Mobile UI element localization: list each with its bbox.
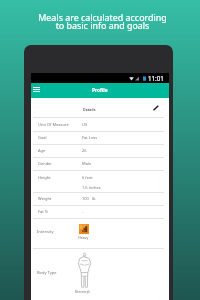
button[interactable]: Edit profile	[152, 104, 160, 112]
staticText: US	[82, 122, 88, 127]
staticText: Height	[38, 175, 82, 180]
staticText: Profile	[92, 87, 108, 94]
button[interactable]: Unit Of Measure	[31, 118, 169, 132]
staticText: Fat %	[38, 209, 82, 214]
staticText: Mesomorph	[75, 290, 90, 294]
staticText: 1.6 inches	[82, 185, 101, 190]
staticText: 6 feet	[82, 175, 93, 180]
staticText: Gender	[38, 161, 82, 166]
button[interactable]: Body Type	[31, 249, 169, 300]
button[interactable]: Open navigation menu	[31, 85, 42, 94]
staticText: Heavy	[78, 235, 89, 240]
staticText: Intensity	[37, 229, 54, 234]
staticText: Unit Of Measure	[38, 122, 82, 127]
staticText: 11:01	[148, 74, 164, 82]
staticText: Details	[83, 107, 96, 112]
button[interactable]: Weight	[31, 193, 169, 206]
button[interactable]: Height	[31, 171, 169, 193]
staticText: Body Type	[37, 270, 57, 275]
button[interactable]: Details	[31, 98, 169, 118]
button[interactable]: Gender	[31, 158, 169, 171]
staticText: Age	[38, 148, 82, 153]
staticText: 100 lb	[82, 196, 96, 201]
staticText: Male	[82, 161, 92, 166]
staticText: -	[82, 209, 84, 214]
button[interactable]: Intensity	[31, 219, 169, 249]
staticText: Fat Loss	[82, 135, 98, 140]
staticText: Goal	[38, 135, 82, 140]
button[interactable]: Goal	[31, 132, 169, 145]
button[interactable]: Fat %	[31, 206, 169, 219]
button[interactable]: Age	[31, 145, 169, 158]
staticText: 26	[82, 148, 87, 153]
staticText: Weight	[38, 196, 82, 201]
staticText: Meals are calculated according to basic …	[5, 11, 200, 32]
